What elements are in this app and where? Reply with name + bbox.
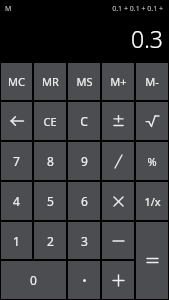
- button[interactable]: Equals: [136, 222, 168, 299]
- staticText: 9: [81, 153, 88, 169]
- button[interactable]: Minus: [102, 222, 134, 259]
- staticText: 4: [13, 193, 20, 209]
- staticText: 3: [81, 233, 88, 249]
- staticText: MR: [42, 74, 59, 89]
- staticText: M-: [145, 74, 159, 89]
- button[interactable]: Multiply: [102, 182, 134, 220]
- staticText: CE: [43, 114, 57, 129]
- button[interactable]: Plus minus: [102, 102, 134, 140]
- staticText: 1: [13, 233, 20, 249]
- button[interactable]: M-: [136, 63, 168, 100]
- staticText: 0.3: [131, 23, 163, 54]
- button[interactable]: Plus: [102, 261, 134, 299]
- staticText: C: [80, 113, 88, 129]
- button[interactable]: 6: [68, 182, 100, 220]
- button[interactable]: MC: [1, 63, 32, 100]
- staticText: MC: [8, 74, 25, 89]
- button[interactable]: 0: [1, 261, 66, 299]
- staticText: 0: [30, 272, 37, 288]
- button[interactable]: MR: [34, 63, 66, 100]
- staticText: 5: [47, 193, 54, 209]
- button[interactable]: Square root: [136, 102, 168, 140]
- button[interactable]: CE: [34, 102, 66, 140]
- button[interactable]: 2: [34, 222, 66, 259]
- staticText: MS: [76, 74, 93, 89]
- button[interactable]: 8: [34, 142, 66, 180]
- staticText: M: [5, 4, 12, 14]
- button[interactable]: %: [136, 142, 168, 180]
- button[interactable]: 1: [1, 222, 32, 259]
- staticText: 7: [13, 153, 20, 169]
- button[interactable]: M+: [102, 63, 134, 100]
- button[interactable]: MS: [68, 63, 100, 100]
- staticText: 1/x: [144, 194, 161, 209]
- button[interactable]: 4: [1, 182, 32, 220]
- button[interactable]: 5: [34, 182, 66, 220]
- button[interactable]: Divide: [102, 142, 134, 180]
- staticText: 6: [81, 193, 88, 209]
- staticText: 2: [47, 233, 54, 249]
- staticText: M+: [110, 74, 127, 89]
- button[interactable]: C: [68, 102, 100, 140]
- button[interactable]: 9: [68, 142, 100, 180]
- button[interactable]: 1/x: [136, 182, 168, 220]
- staticText: %: [147, 154, 157, 169]
- button[interactable]: Backspace: [1, 102, 32, 140]
- staticText: 0.1 + 0.1 + 0.1 +: [112, 4, 163, 14]
- button[interactable]: Decimal point: [68, 261, 100, 299]
- staticText: 8: [47, 153, 54, 169]
- button[interactable]: 7: [1, 142, 32, 180]
- button[interactable]: 3: [68, 222, 100, 259]
